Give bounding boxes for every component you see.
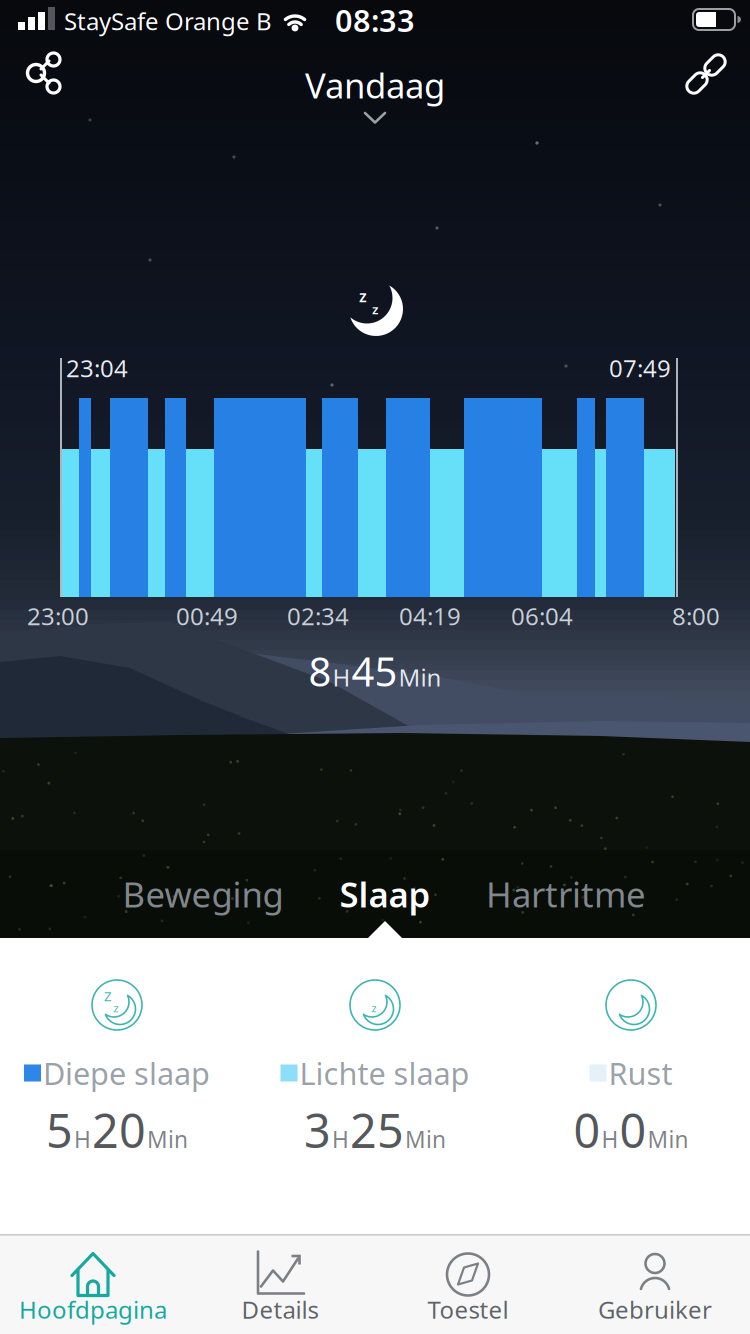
staticText: Lichte slaap [299, 1053, 469, 1093]
staticText: z [113, 1001, 118, 1015]
staticText: Min [147, 1124, 188, 1154]
staticText: StaySafe Orange B [64, 5, 272, 37]
staticText: 06:04 [511, 600, 573, 632]
staticText: 8:00 [672, 600, 720, 632]
staticText: 5 [46, 1099, 73, 1161]
staticText: 45 [351, 644, 397, 697]
button[interactable]: Beweging [122, 871, 283, 917]
staticText: Min [398, 661, 441, 693]
staticText: Hoofdpagina [19, 1294, 167, 1325]
staticText: Gebruiker [598, 1294, 712, 1325]
staticText: 08:33 [335, 0, 415, 40]
button[interactable]: Toestel [380, 1238, 556, 1333]
staticText: Slaap [339, 871, 430, 917]
staticText: Beweging [122, 871, 283, 917]
button[interactable]: Hartritme [486, 871, 646, 917]
staticText: H [332, 661, 350, 693]
staticText: z [359, 285, 367, 307]
button[interactable]: Share [16, 44, 72, 100]
button[interactable]: Gebruiker [567, 1238, 743, 1333]
staticText: Hartritme [486, 871, 646, 917]
staticText: Diepe slaap [43, 1053, 210, 1093]
staticText: 20 [92, 1099, 146, 1161]
staticText: H [74, 1124, 91, 1154]
button[interactable]: Details [192, 1238, 368, 1333]
staticText: 23:04 [66, 352, 128, 384]
staticText: z [371, 1001, 376, 1015]
staticText: Vandaag [305, 62, 445, 108]
staticText: Toestel [427, 1294, 508, 1325]
staticText: 0 [573, 1099, 600, 1161]
staticText: 3 [304, 1099, 331, 1161]
staticText: 04:19 [399, 600, 461, 632]
staticText: z [372, 300, 378, 318]
staticText: 25 [350, 1099, 404, 1161]
staticText: 02:34 [287, 600, 349, 632]
staticText: 0 [619, 1099, 646, 1161]
button[interactable]: Link device [678, 46, 734, 102]
button[interactable]: Change day [363, 111, 387, 125]
button[interactable]: Hoofdpagina [5, 1238, 181, 1333]
staticText: Details [241, 1294, 318, 1325]
staticText: 00:49 [176, 600, 238, 632]
staticText: H [601, 1124, 618, 1154]
button[interactable]: Slaap [339, 871, 430, 917]
staticText: 8 [308, 644, 331, 697]
staticText: Min [405, 1124, 446, 1154]
staticText: Z [104, 987, 112, 1005]
staticText: 07:49 [609, 352, 671, 384]
staticText: Rust [608, 1053, 672, 1093]
staticText: 23:00 [27, 600, 89, 632]
staticText: Min [647, 1124, 688, 1154]
staticText: H [332, 1124, 349, 1154]
